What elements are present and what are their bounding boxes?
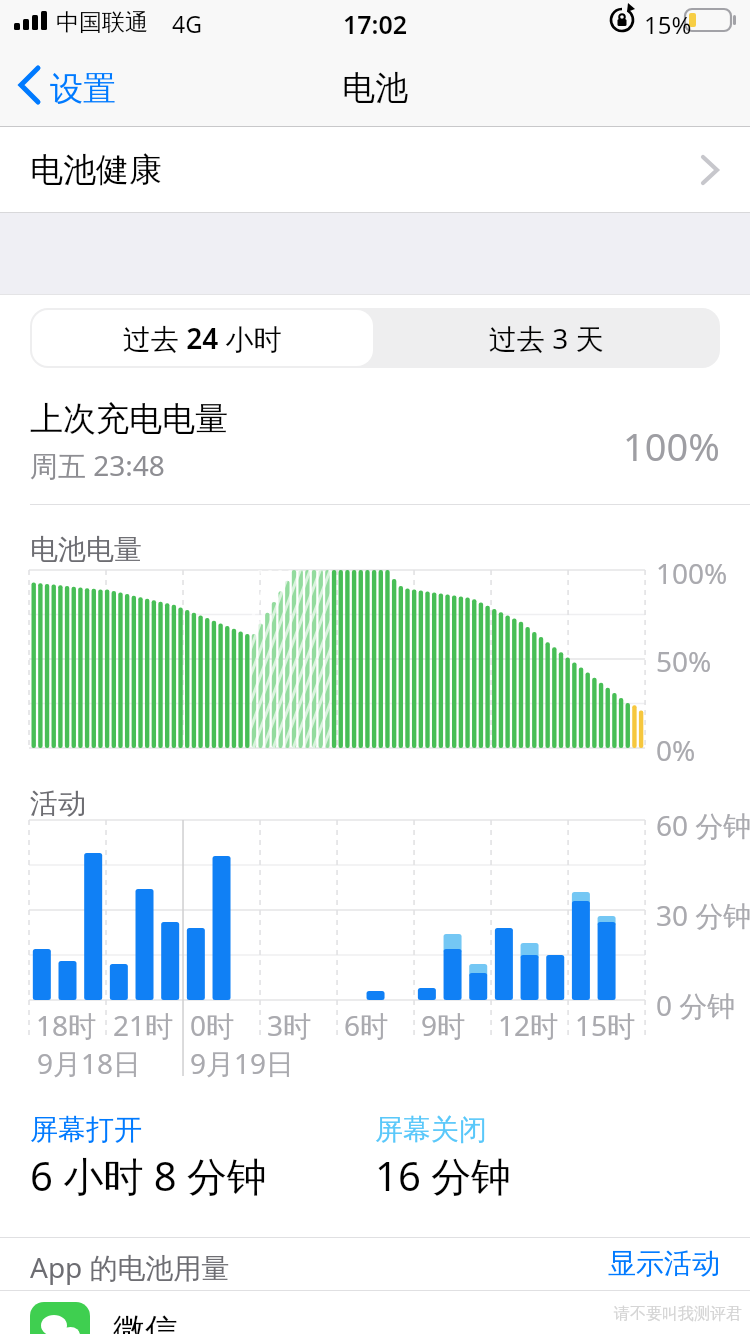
staticText: 60 分钟: [656, 806, 750, 844]
staticText: 100%: [623, 420, 720, 472]
staticText: 电池电量: [30, 532, 142, 567]
staticText: 0时: [190, 1006, 235, 1044]
button[interactable]: 过去 3 天: [375, 310, 718, 366]
staticText: 30 分钟: [656, 896, 750, 934]
staticText: 中国联通: [56, 8, 148, 37]
staticText: 3时: [267, 1006, 312, 1044]
button[interactable]: 显示活动: [0, 1246, 720, 1281]
staticText: 100%: [656, 554, 728, 592]
staticText: 4G: [172, 8, 202, 39]
button[interactable]: 过去 24 小时: [32, 310, 373, 366]
staticText: 电池健康: [30, 149, 162, 191]
button[interactable]: [0, 1291, 750, 1334]
staticText: 屏幕关闭: [375, 1112, 487, 1147]
button[interactable]: 电池健康: [0, 127, 750, 212]
staticText: 6 小时 8 分钟: [30, 1148, 267, 1203]
staticText: 过去 24 小时: [123, 319, 282, 357]
staticText: 微信: [113, 1310, 177, 1334]
staticText: App 的电池用量: [30, 1248, 230, 1286]
staticText: 周五 23:48: [30, 446, 165, 484]
staticText: 9月18日: [37, 1044, 142, 1082]
staticText: 电池: [342, 67, 408, 109]
staticText: 请不要叫我测评君: [614, 1304, 742, 1324]
staticText: 活动: [30, 786, 86, 821]
staticText: 过去 3 天: [489, 319, 604, 357]
button[interactable]: [18, 60, 128, 110]
staticText: 显示活动: [608, 1246, 720, 1281]
staticText: 9月19日: [190, 1044, 295, 1082]
staticText: 0 分钟: [656, 986, 736, 1024]
staticText: 12时: [498, 1006, 559, 1044]
staticText: 50%: [656, 642, 712, 680]
staticText: 17:02: [343, 7, 408, 41]
staticText: 18时: [36, 1006, 97, 1044]
staticText: 15时: [575, 1006, 636, 1044]
staticText: 21时: [113, 1006, 174, 1044]
staticText: 6时: [344, 1006, 389, 1044]
staticText: 15%: [644, 8, 692, 41]
staticText: 屏幕打开: [30, 1112, 142, 1147]
staticText: 0%: [656, 731, 696, 769]
staticText: 上次充电电量: [30, 398, 228, 440]
staticText: 16 分钟: [375, 1148, 512, 1203]
staticText: 9时: [421, 1006, 466, 1044]
staticText: 设置: [50, 68, 116, 110]
